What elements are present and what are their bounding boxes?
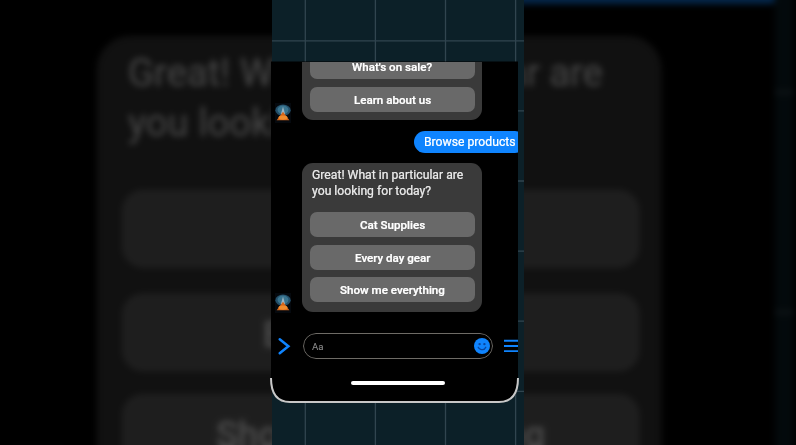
button[interactable]: Show me everything <box>310 277 475 302</box>
staticText: Every day gear <box>355 251 431 265</box>
staticText: What's on sale? <box>352 62 433 74</box>
button[interactable]: Emoji <box>474 338 490 354</box>
staticText: Cat Supplies <box>279 208 486 252</box>
staticText: Every day gear <box>263 312 502 356</box>
button[interactable]: Every day gear <box>122 293 640 372</box>
button[interactable]: What's on sale? <box>310 62 475 79</box>
button[interactable]: Show me everything <box>122 394 640 445</box>
button[interactable]: Every day gear <box>310 245 475 270</box>
staticText: Browse products <box>424 135 516 149</box>
button[interactable]: Menu <box>504 338 518 354</box>
button[interactable]: Learn about us <box>310 87 475 112</box>
button[interactable]: Open actions <box>276 335 292 357</box>
staticText: Show me everything <box>340 283 445 297</box>
button[interactable]: Browse products <box>448 0 775 4</box>
staticText: Cat Supplies <box>360 218 426 232</box>
staticText: Great! What in particular are you lookin… <box>128 51 655 146</box>
staticText: Learn about us <box>354 93 432 107</box>
button[interactable]: Browse products <box>414 131 518 153</box>
button[interactable]: Cat Supplies <box>122 189 640 268</box>
button[interactable]: Cat Supplies <box>310 212 475 237</box>
staticText: Aa <box>312 341 324 352</box>
staticText: Great! What in particular are you lookin… <box>312 168 480 198</box>
staticText: Show me everything <box>216 412 546 445</box>
button[interactable]: Aa <box>303 333 493 359</box>
